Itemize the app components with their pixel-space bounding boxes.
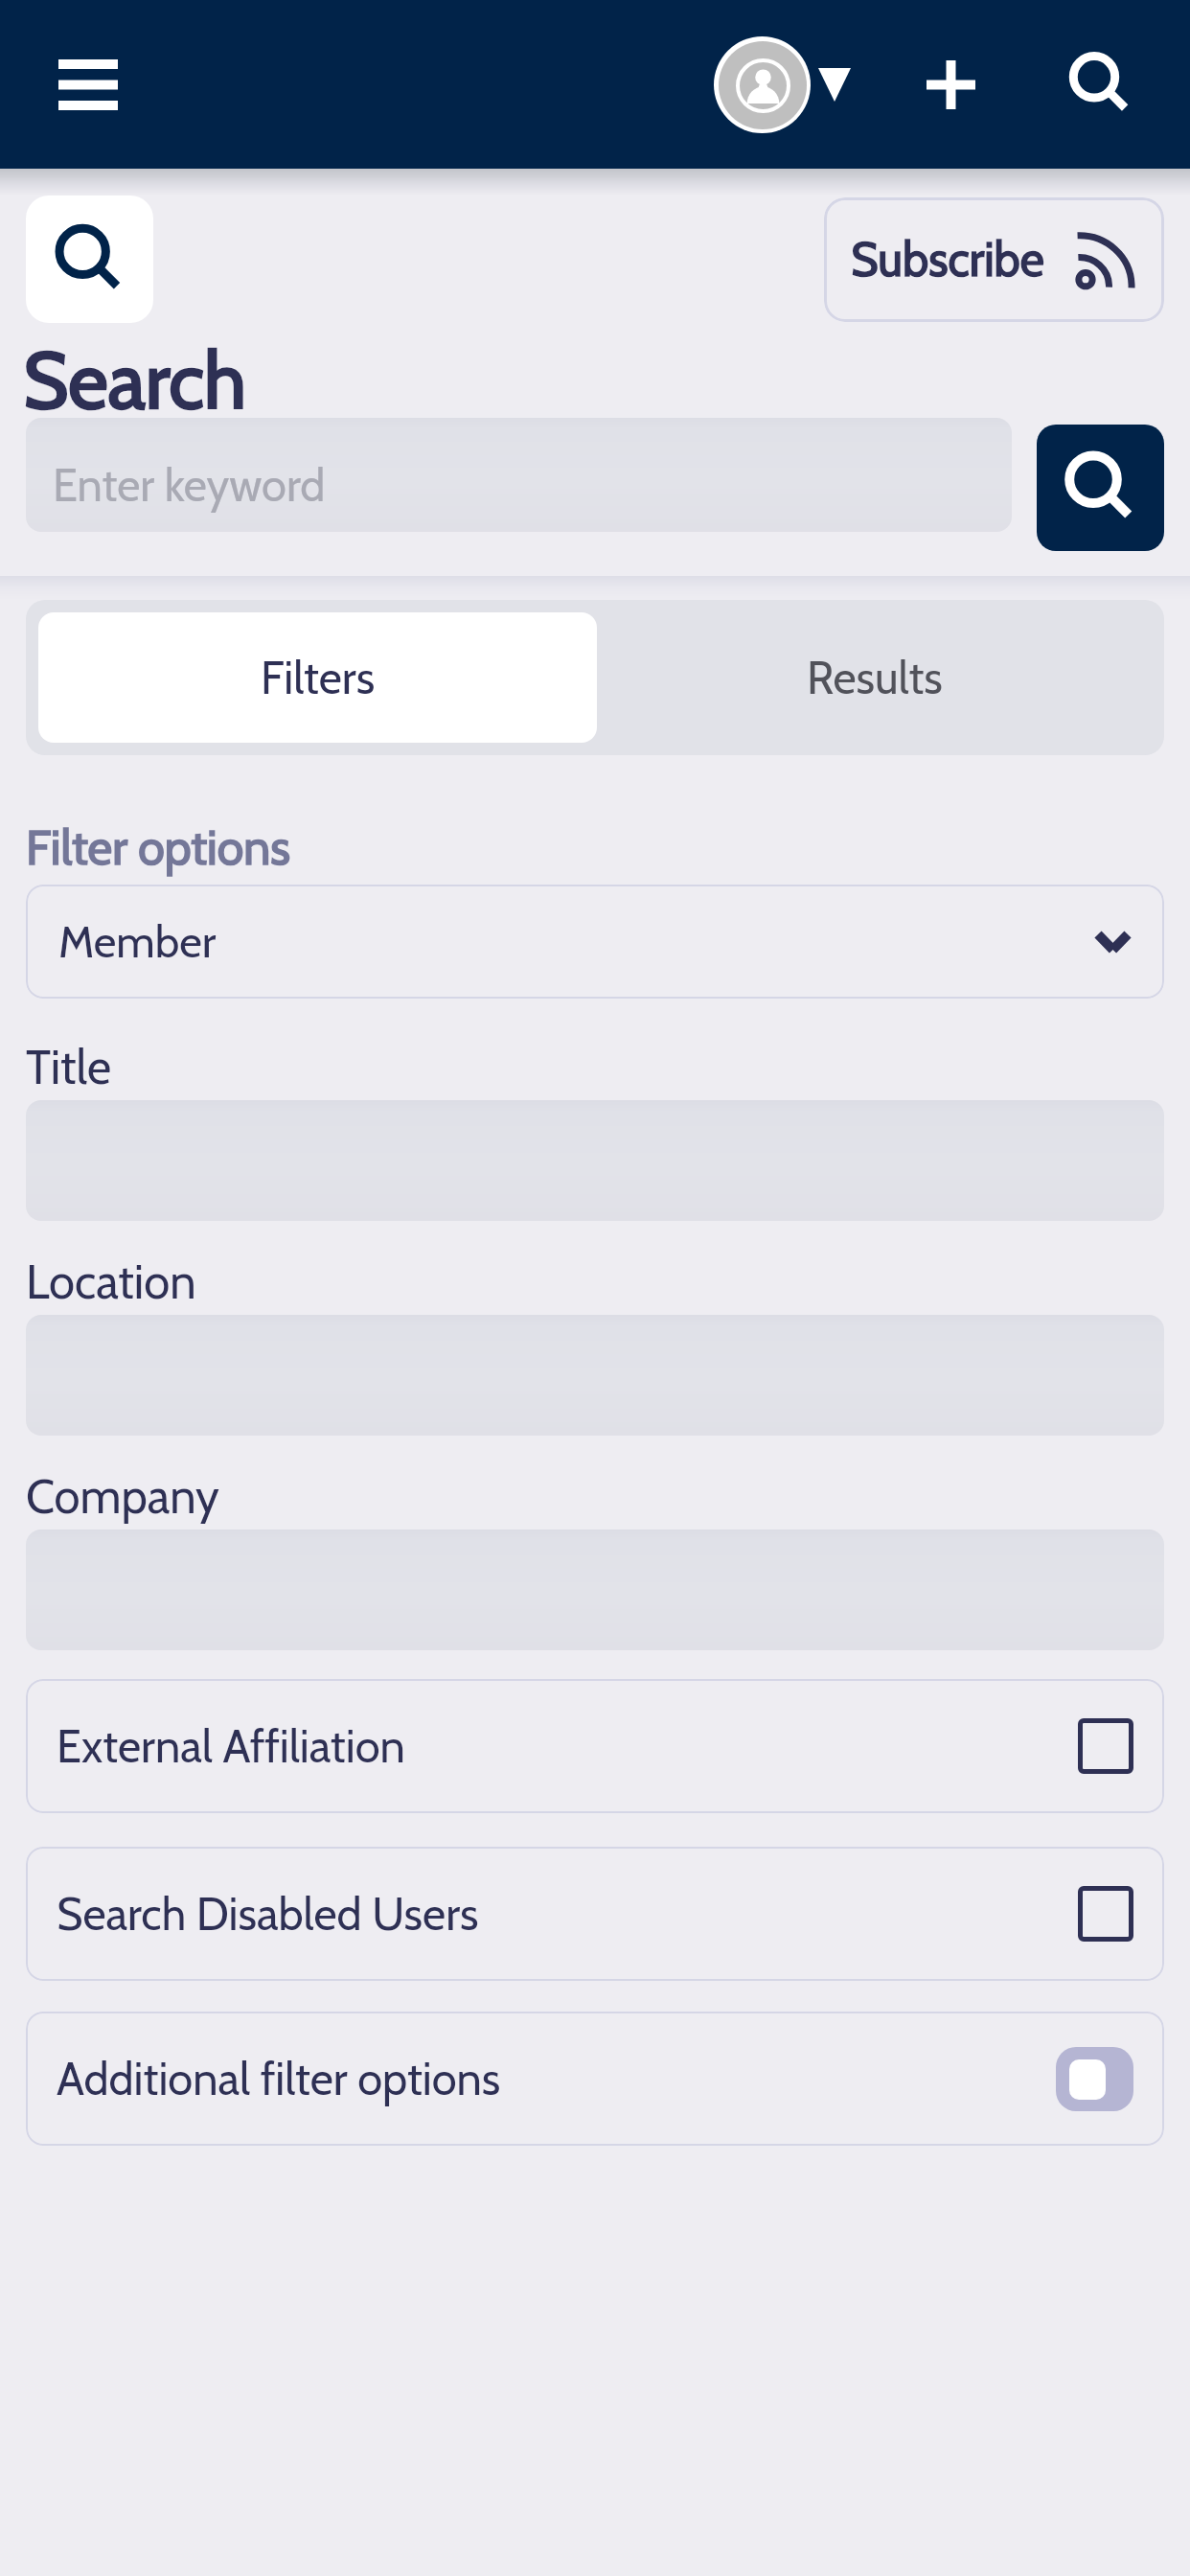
button[interactable]: Search bbox=[1053, 36, 1149, 132]
staticText: Additional filter options bbox=[57, 2052, 501, 2106]
button[interactable]: Add bbox=[903, 36, 998, 132]
button[interactable]: Results bbox=[597, 612, 1152, 743]
staticText: Filter options bbox=[26, 818, 290, 877]
staticText: Results bbox=[807, 651, 943, 705]
button[interactable]: Search Disabled Users bbox=[26, 1847, 1164, 1981]
staticText: Title bbox=[26, 1039, 111, 1094]
staticText: Enter keyword bbox=[53, 458, 326, 513]
staticText: Company bbox=[26, 1468, 219, 1524]
button[interactable]: Additional filter options bbox=[26, 2012, 1164, 2146]
staticText: External Affiliation bbox=[57, 1719, 405, 1774]
button[interactable]: Member bbox=[26, 885, 1164, 999]
button[interactable]: Enter keyword bbox=[26, 418, 1012, 532]
staticText: Search Disabled Users bbox=[57, 1887, 479, 1942]
button[interactable]: Subscribe bbox=[824, 197, 1164, 322]
button[interactable]: Account bbox=[704, 36, 857, 133]
staticText: Subscribe bbox=[851, 231, 1044, 288]
button[interactable]: Filters bbox=[38, 612, 597, 743]
button[interactable]: Submit search bbox=[1037, 425, 1164, 551]
staticText: Member bbox=[58, 915, 217, 969]
staticText: Location bbox=[26, 1253, 196, 1309]
staticText: Search bbox=[23, 333, 246, 418]
button[interactable]: Menu bbox=[50, 34, 126, 135]
button[interactable]: Search bbox=[26, 195, 153, 323]
button[interactable]: External Affiliation bbox=[26, 1679, 1164, 1813]
staticText: Filters bbox=[261, 651, 376, 705]
